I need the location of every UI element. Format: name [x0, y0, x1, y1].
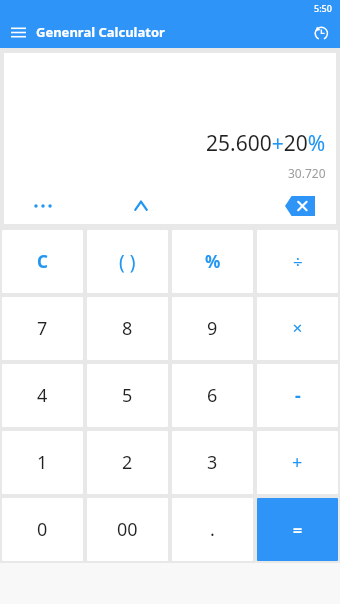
staticText: Genenral Calculator [36, 23, 165, 41]
button[interactable]: ✕ [257, 297, 338, 360]
staticText: 2 [122, 450, 133, 475]
button[interactable]: . [172, 498, 253, 561]
button[interactable]: 00 [87, 498, 168, 561]
button[interactable]: 4 [2, 364, 83, 427]
button[interactable]: Menu [4, 18, 32, 46]
button[interactable]: More options [26, 189, 60, 223]
staticText: 25.600+20% [206, 129, 326, 158]
button[interactable]: ( ) [87, 230, 168, 293]
staticText: 30.720 [288, 165, 326, 181]
button[interactable]: Backspace [282, 193, 318, 219]
staticText: % [205, 250, 221, 273]
button[interactable]: Expand [124, 189, 158, 223]
button[interactable]: 2 [87, 431, 168, 494]
staticText: 5 [122, 383, 133, 408]
staticText: ( ) [119, 249, 136, 275]
button[interactable]: + [257, 431, 338, 494]
button[interactable]: 9 [172, 297, 253, 360]
staticText: - [295, 383, 301, 408]
staticText: ✕ [292, 321, 303, 336]
staticText: 6 [207, 383, 218, 408]
button[interactable]: 8 [87, 297, 168, 360]
button[interactable]: % [172, 230, 253, 293]
staticText: = [293, 519, 303, 541]
staticText: 0 [37, 517, 48, 542]
button[interactable]: 5 [87, 364, 168, 427]
staticText: . [210, 517, 215, 542]
button[interactable]: History [306, 18, 334, 46]
staticText: ÷ [293, 250, 303, 273]
button[interactable]: 6 [172, 364, 253, 427]
button[interactable]: ÷ [257, 230, 338, 293]
staticText: 7 [37, 316, 48, 341]
staticText: 5:50 [314, 2, 332, 14]
staticText: 8 [122, 316, 133, 341]
button[interactable]: = [257, 498, 338, 561]
button[interactable]: 3 [172, 431, 253, 494]
button[interactable]: - [257, 364, 338, 427]
staticText: 9 [207, 316, 218, 341]
button[interactable]: C [2, 230, 83, 293]
button[interactable]: 0 [2, 498, 83, 561]
staticText: 4 [37, 383, 48, 408]
staticText: + [292, 450, 303, 475]
button[interactable]: 7 [2, 297, 83, 360]
button[interactable]: 1 [2, 431, 83, 494]
staticText: C [37, 250, 48, 273]
staticText: 1 [37, 450, 48, 475]
staticText: 3 [207, 450, 218, 475]
staticText: 00 [117, 517, 138, 542]
